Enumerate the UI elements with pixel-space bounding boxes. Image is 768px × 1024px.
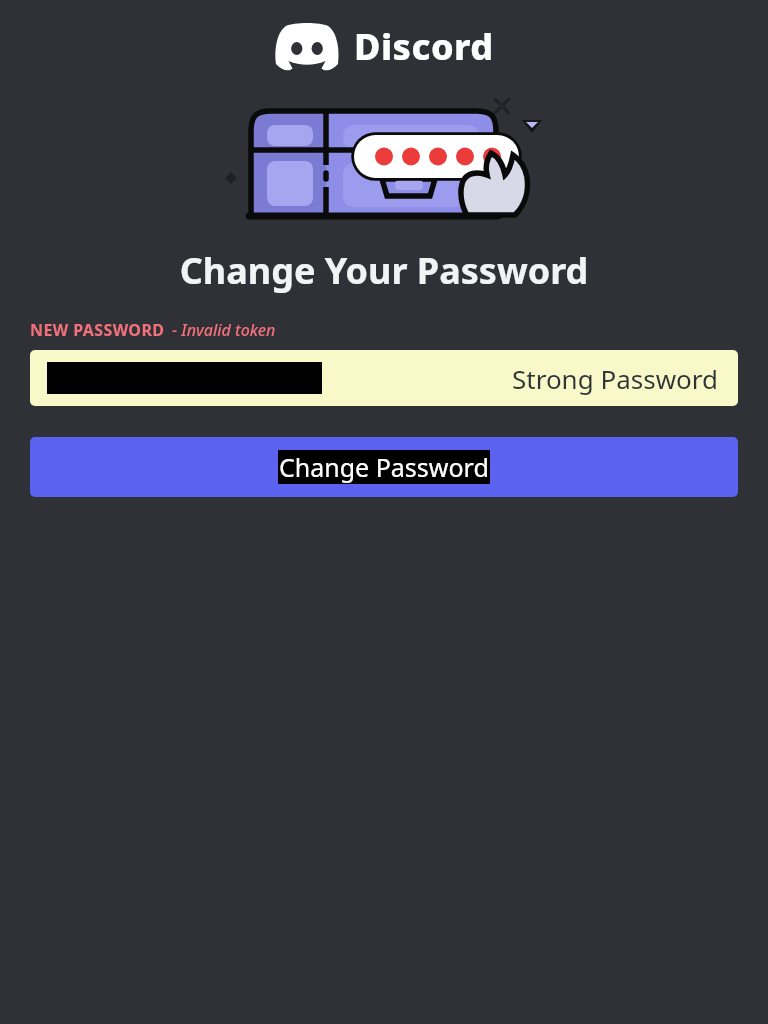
staticText: - Invalid token: [172, 319, 276, 341]
staticText: Change Password: [279, 450, 489, 484]
staticText: Change Your Password: [0, 246, 768, 295]
staticText: Strong Password: [512, 361, 719, 396]
staticText: Discord: [354, 22, 494, 71]
button[interactable]: Change Password: [30, 437, 738, 497]
button[interactable]: Strong Password: [30, 350, 738, 406]
staticText: NEW PASSWORD: [30, 319, 165, 341]
